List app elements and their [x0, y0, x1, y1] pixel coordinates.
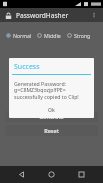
- staticText: PasswordHasher: [16, 11, 89, 20]
- button[interactable]: Generate: [5, 111, 98, 122]
- button[interactable]: More options: [89, 10, 99, 20]
- button[interactable]: Recent apps: [73, 166, 90, 183]
- staticText: Ok: [48, 107, 55, 114]
- staticText: Success: [14, 62, 40, 72]
- staticText: Strong: [74, 32, 91, 39]
- button[interactable]: Home: [43, 166, 60, 183]
- button[interactable]: Strong: [67, 30, 97, 41]
- button[interactable]: Reset: [5, 125, 98, 136]
- staticText: Middle: [44, 32, 61, 39]
- staticText: Generated Password: g=C8MZ3bqozjp!fPE= s…: [14, 80, 79, 101]
- button[interactable]: Middle: [37, 30, 67, 41]
- staticText: Reset: [44, 127, 59, 134]
- button[interactable]: Normal: [6, 30, 37, 41]
- staticText: Normal: [13, 32, 32, 39]
- button[interactable]: Ok: [43, 106, 60, 115]
- button[interactable]: App icon: [4, 11, 13, 20]
- button[interactable]: Back: [13, 166, 30, 183]
- staticText: Generate: [39, 113, 64, 120]
